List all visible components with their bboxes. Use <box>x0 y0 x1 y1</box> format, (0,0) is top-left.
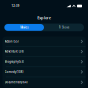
staticText: Comedy (108) <box>5 70 24 74</box>
button[interactable]: TV Shows <box>44 24 84 31</box>
staticText: Action (55) <box>5 40 19 43</box>
button[interactable]: Documentary (64) <box>2 77 86 87</box>
staticText: Biography (53) <box>5 60 24 63</box>
button[interactable]: Biography (53) <box>2 57 86 67</box>
staticText: TV Shows <box>58 26 69 29</box>
button[interactable]: Comedy (108) <box>2 67 86 77</box>
staticText: Explore <box>37 15 51 20</box>
staticText: Adventure (38) <box>5 50 24 53</box>
staticText: 12:39 <box>11 4 20 8</box>
button[interactable]: Movies <box>4 24 44 31</box>
staticText: Documentary (64) <box>5 80 28 84</box>
button[interactable]: Adventure (38) <box>2 47 86 57</box>
staticText: Movies <box>20 26 28 29</box>
button[interactable]: Action (55) <box>2 37 86 47</box>
